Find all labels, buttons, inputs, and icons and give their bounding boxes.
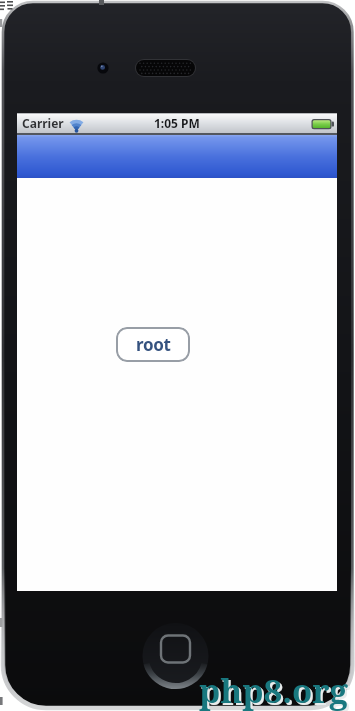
staticText: php8.org xyxy=(201,670,350,711)
staticText: php8.org xyxy=(199,668,348,711)
staticText: 1:05 PM xyxy=(154,115,200,131)
staticText: root xyxy=(136,333,171,356)
button[interactable]: root xyxy=(116,327,190,362)
staticText: Carrier xyxy=(22,115,64,131)
